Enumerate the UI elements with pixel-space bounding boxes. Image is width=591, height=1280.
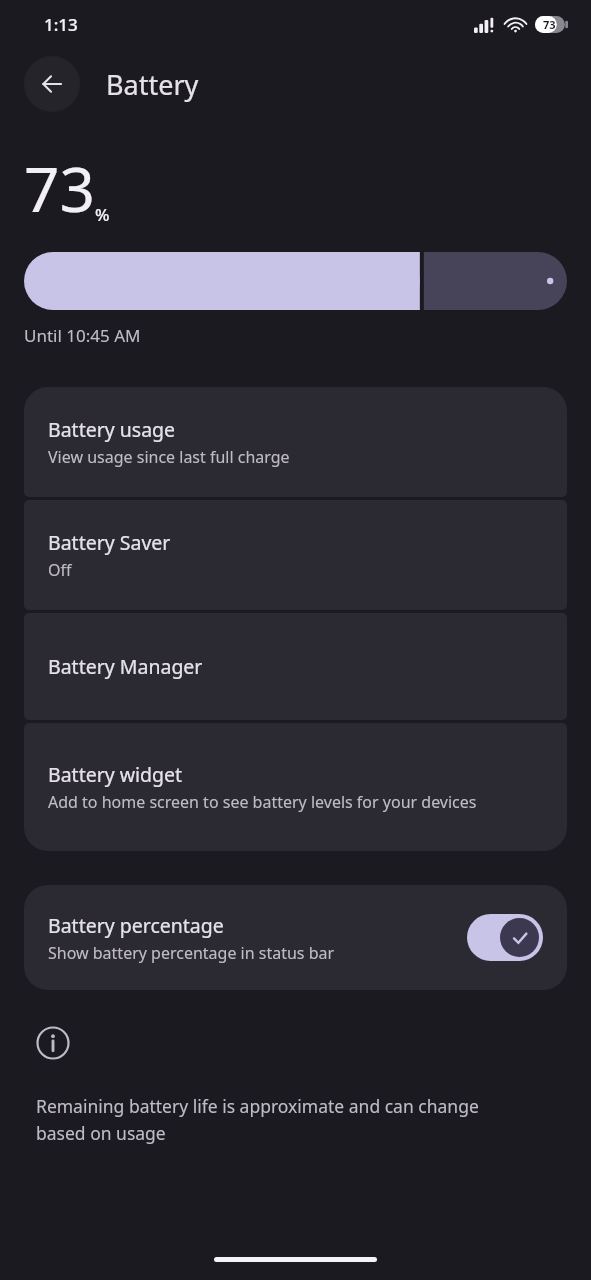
button[interactable]: Battery percentage toggle [467, 914, 543, 961]
button[interactable]: Battery widget [24, 723, 567, 851]
staticText: Battery percentage [48, 912, 224, 939]
staticText: Battery [106, 66, 199, 103]
staticText: Until 10:45 AM [24, 324, 141, 347]
button[interactable]: Battery usage [24, 387, 567, 497]
staticText: Remaining battery life is approximate an… [36, 1094, 511, 1145]
staticText: Show battery percentage in status bar [48, 942, 335, 964]
staticText: 73 [543, 17, 556, 32]
staticText: 73 [24, 146, 95, 230]
button[interactable]: Battery percentage [24, 885, 567, 990]
staticText: % [95, 203, 110, 226]
staticText: 1:13 [44, 13, 78, 36]
staticText: Battery Saver [48, 529, 171, 556]
button[interactable]: Back [24, 56, 80, 112]
staticText: Battery widget [48, 761, 183, 788]
staticText: Battery Manager [48, 653, 203, 680]
staticText: Battery usage [48, 416, 176, 443]
button[interactable]: Battery Manager [24, 613, 567, 720]
staticText: View usage since last full charge [48, 446, 290, 468]
staticText: Add to home screen to see battery levels… [48, 791, 477, 813]
staticText: Off [48, 559, 72, 581]
button[interactable]: Battery Saver [24, 500, 567, 610]
